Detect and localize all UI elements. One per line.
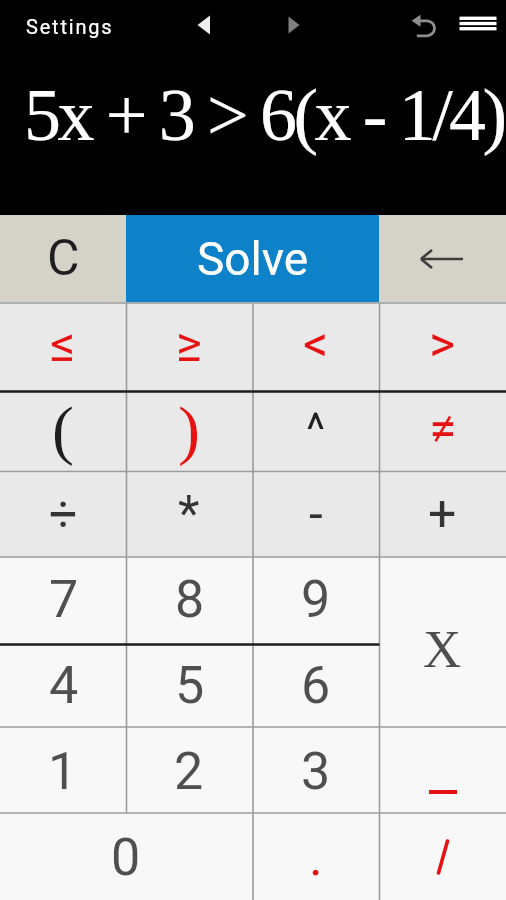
button[interactable]: 5 (127, 642, 253, 728)
button[interactable]: Solve (126, 215, 379, 302)
button[interactable]: - (252, 472, 379, 557)
staticText: 4 (49, 655, 79, 716)
button[interactable] (379, 814, 506, 900)
button[interactable]: 6 (253, 642, 379, 728)
staticText: 7 (49, 569, 79, 630)
button[interactable]: + (379, 472, 506, 557)
button[interactable]: 2 (126, 728, 252, 814)
button[interactable]: ≠ (379, 387, 506, 472)
staticText: - (309, 485, 323, 544)
staticText: ) (178, 393, 200, 466)
button[interactable]: 1 (0, 728, 126, 814)
staticText: 0 (111, 827, 141, 888)
button[interactable] (379, 728, 506, 814)
button[interactable]: X (379, 557, 506, 728)
button[interactable]: ≤ (0, 302, 126, 387)
button[interactable]: Settings (26, 8, 114, 44)
button[interactable]: ≥ (126, 302, 252, 387)
button[interactable]: 4 (0, 642, 127, 728)
staticText: 9 (301, 569, 331, 630)
button[interactable]: 8 (127, 557, 253, 642)
button[interactable] (283, 10, 307, 40)
button[interactable]: > (379, 302, 506, 387)
button[interactable]: 0 (0, 814, 252, 900)
button[interactable] (406, 10, 440, 44)
staticText: > (429, 315, 456, 374)
staticText: Solve (197, 232, 309, 286)
button[interactable]: C (0, 215, 126, 302)
button[interactable]: < (252, 302, 379, 387)
button[interactable] (379, 215, 506, 302)
button[interactable]: ÷ (0, 472, 126, 557)
button[interactable] (455, 10, 501, 38)
button[interactable]: 9 (253, 557, 379, 642)
staticText: * (178, 485, 200, 544)
staticText: + (428, 485, 457, 544)
staticText: 1 (48, 741, 78, 802)
button[interactable]: ^ (252, 387, 379, 472)
staticText: Settings (26, 15, 114, 38)
button[interactable]: * (126, 472, 252, 557)
button[interactable]: 3 (252, 728, 379, 814)
staticText: 2 (174, 741, 204, 802)
staticText: . (309, 827, 323, 888)
button[interactable] (190, 10, 220, 40)
staticText: 8 (175, 569, 205, 630)
staticText: 5 (175, 655, 205, 716)
staticText: ^ (306, 403, 326, 457)
staticText: ( (52, 393, 74, 466)
staticText: ≤ (50, 315, 76, 374)
staticText: 6 (301, 655, 331, 716)
staticText: X (423, 620, 462, 679)
button[interactable]: 7 (0, 557, 127, 642)
staticText: 3 (301, 741, 331, 802)
button[interactable]: ) (126, 387, 252, 472)
button[interactable]: ( (0, 387, 126, 472)
staticText: ≥ (176, 315, 203, 374)
staticText: 5x + 3 > 6(x - 1/4) (24, 74, 504, 156)
staticText: < (303, 315, 329, 374)
staticText: ÷ (49, 485, 78, 544)
button[interactable]: . (252, 814, 379, 900)
staticText: ≠ (429, 400, 457, 459)
staticText: C (47, 229, 80, 288)
